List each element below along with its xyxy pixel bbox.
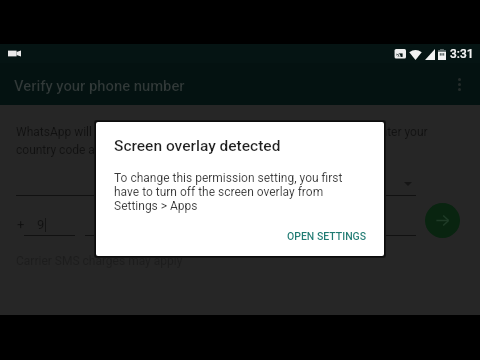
staticText: Verify your phone number [14,77,185,94]
staticText: + [17,217,25,232]
staticText: 9 [37,217,45,232]
staticText: 3:31 [450,47,474,61]
button[interactable]: More options [438,63,480,105]
button[interactable]: OPEN SETTINGS [281,224,373,248]
staticText: WhatsApp will send an SMS message to ver… [16,125,436,157]
button[interactable]: Next [425,203,460,238]
staticText: OPEN SETTINGS [287,230,367,242]
staticText: Carrier SMS charges may apply [16,254,183,268]
staticText: Screen overlay detected [114,137,281,155]
staticText: To change this permission setting, you f… [114,171,347,213]
other: Screen recording [8,49,21,58]
